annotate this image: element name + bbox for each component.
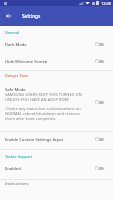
button[interactable]: Navigate up bbox=[0, 6, 17, 26]
button[interactable]: Toggle setting bbox=[95, 40, 104, 48]
button[interactable] bbox=[0, 80, 113, 131]
staticText: Safe Mode bbox=[5, 87, 26, 93]
staticText: Enabled bbox=[5, 166, 21, 172]
staticText: Hide Welcome Screen bbox=[5, 59, 48, 65]
staticText: Instructions bbox=[5, 181, 29, 187]
button[interactable] bbox=[0, 178, 113, 195]
button[interactable]: Toggle setting bbox=[95, 164, 104, 172]
button[interactable]: Toggle setting bbox=[95, 135, 104, 143]
staticText: Dark Mode bbox=[5, 42, 27, 48]
button[interactable]: Toggle setting bbox=[95, 57, 104, 65]
button[interactable] bbox=[0, 131, 113, 149]
button[interactable] bbox=[0, 161, 113, 178]
staticText: Tasker Support bbox=[5, 154, 33, 159]
button[interactable] bbox=[0, 36, 113, 53]
staticText: 12:30 bbox=[101, 1, 111, 6]
staticText: Settings bbox=[22, 13, 41, 19]
button[interactable] bbox=[0, 53, 113, 70]
button[interactable]: Toggle setting bbox=[95, 98, 104, 106]
staticText: General bbox=[5, 30, 20, 35]
staticText: Danger Zone bbox=[5, 73, 29, 78]
staticText: Enable Custom Settings Input bbox=[5, 137, 64, 143]
staticText: SAMSUNG USERS KEEP THIS TURNED ON UNLESS… bbox=[5, 92, 82, 102]
staticText: Clears any status bar customizations on … bbox=[5, 106, 81, 121]
